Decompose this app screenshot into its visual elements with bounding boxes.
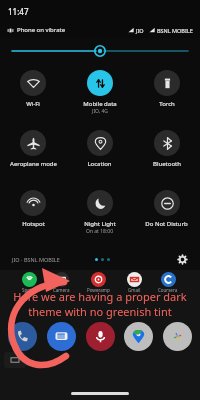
staticText: Hotspot (22, 220, 45, 228)
staticText: JIO · BSNL MOBILE (12, 256, 60, 263)
button[interactable]: Torch (133, 64, 200, 124)
staticText: Wi-Fi (26, 100, 40, 108)
staticText: On at 18:00 (86, 228, 113, 235)
staticText: Location (87, 160, 112, 168)
staticText: JIO, 4G (92, 108, 108, 115)
staticText: Aeroplane mode (10, 160, 57, 168)
button[interactable]: Camera (52, 272, 71, 293)
staticText: Bluetooth (153, 160, 181, 168)
staticText: 11:47 (8, 6, 29, 17)
staticText: Poweramp (87, 287, 110, 293)
staticText: theme with no greenish tint (28, 304, 172, 319)
button[interactable]: Location (66, 124, 133, 184)
button[interactable]: Poweramp (86, 272, 111, 293)
button[interactable]: Messages (47, 322, 76, 351)
button[interactable]: Night Light (66, 184, 133, 244)
staticText: Coursera (158, 287, 178, 293)
button[interactable]: Hotspot (0, 184, 66, 244)
staticText: Camera (53, 287, 70, 293)
button[interactable]: Phone (8, 322, 37, 351)
button[interactable]: Recents (4, 352, 26, 368)
button[interactable]: Photos (163, 322, 192, 351)
button[interactable]: Maps (124, 322, 153, 351)
button[interactable]: Settings (174, 251, 190, 267)
staticText: Mobile data (83, 100, 117, 108)
button[interactable]: Wi-Fi (0, 64, 66, 124)
button[interactable]: Spotify (21, 272, 38, 293)
staticText: BSNL MOBILE (157, 27, 193, 34)
button[interactable]: Assistant voice (86, 322, 115, 351)
button[interactable]: Coursera (157, 272, 179, 293)
button[interactable]: Gmail (126, 272, 143, 293)
button[interactable]: Mobile data (66, 64, 133, 124)
button[interactable]: Bluetooth (133, 124, 200, 184)
staticText: Spotify (22, 287, 37, 293)
staticText: Gmail (128, 287, 141, 293)
staticText: JIO (136, 27, 144, 34)
staticText: Here we are having a proper dark (13, 289, 187, 304)
button[interactable]: Aeroplane mode (0, 124, 66, 184)
button[interactable]: Brightness (0, 38, 200, 64)
staticText: Torch (159, 100, 175, 108)
staticText: Night Light (84, 220, 116, 228)
button[interactable]: Do Not Disturb (133, 184, 200, 244)
staticText: Do Not Disturb (145, 220, 188, 228)
staticText: Phone on vibrate (17, 26, 66, 34)
